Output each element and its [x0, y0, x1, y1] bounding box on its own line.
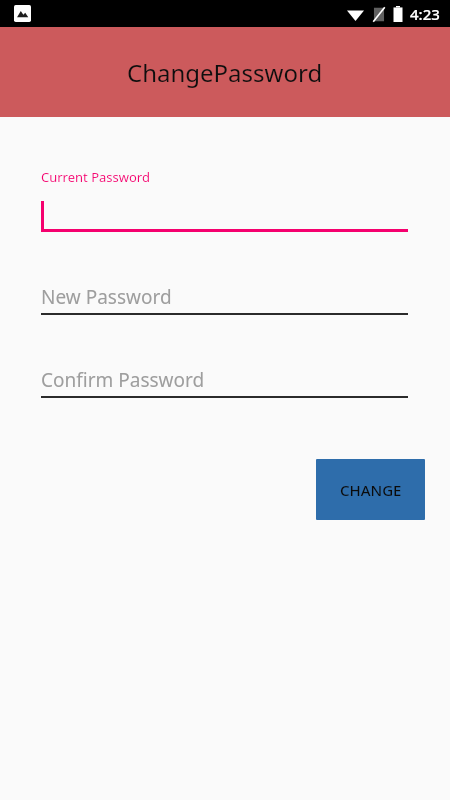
other: Battery: [393, 6, 403, 22]
button[interactable]: CHANGE: [316, 459, 425, 520]
button[interactable]: Current Password: [41, 168, 408, 232]
other: Image notification: [14, 5, 31, 22]
staticText: Confirm Password: [41, 367, 205, 393]
button[interactable]: Confirm Password: [41, 366, 408, 398]
other: No SIM: [373, 7, 385, 22]
staticText: ChangePassword: [127, 56, 323, 89]
staticText: Current Password: [41, 168, 150, 186]
other: Wi-Fi: [347, 8, 364, 21]
staticText: CHANGE: [340, 480, 402, 500]
staticText: 4:23: [410, 4, 440, 24]
button[interactable]: New Password: [41, 283, 408, 315]
staticText: New Password: [41, 284, 172, 310]
